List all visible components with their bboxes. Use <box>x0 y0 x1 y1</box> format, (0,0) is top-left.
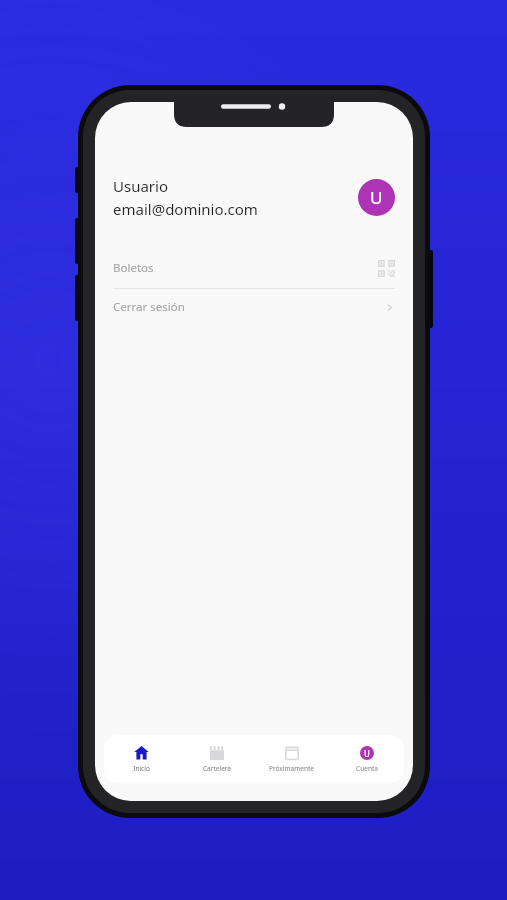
staticText: Cerrar sesión <box>113 299 384 315</box>
staticText: Usuario <box>113 176 168 196</box>
button[interactable]: Boletos <box>95 251 413 285</box>
staticText: Boletos <box>113 260 378 276</box>
button[interactable]: Cerrar sesión <box>95 289 413 325</box>
button[interactable]: Cartelera <box>179 735 254 783</box>
staticText: Inicio <box>133 764 150 773</box>
staticText: Cartelera <box>203 764 231 773</box>
button[interactable]: Próximamente <box>254 735 329 783</box>
staticText: Cuenta <box>356 764 378 773</box>
button[interactable]: U <box>329 735 404 783</box>
staticText: email@dominio.com <box>113 199 258 219</box>
staticText: U <box>370 186 383 209</box>
staticText: Próximamente <box>269 764 314 773</box>
button[interactable]: Perfil de usuario <box>358 179 395 216</box>
button[interactable]: Inicio <box>104 735 179 783</box>
staticText: U <box>364 748 370 759</box>
